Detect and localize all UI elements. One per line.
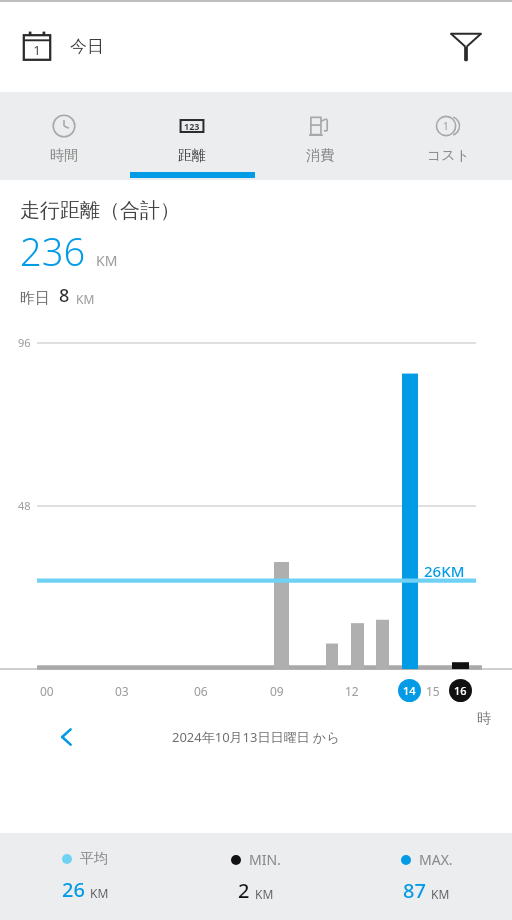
staticText: 2 <box>238 877 250 904</box>
staticText: 00 <box>40 683 54 699</box>
staticText: MAX. <box>419 850 453 869</box>
staticText: KM <box>76 291 95 307</box>
button[interactable]: 1 <box>384 92 512 180</box>
button[interactable]: 16 <box>449 679 472 702</box>
staticText: コスト <box>427 147 470 165</box>
staticText: 消費 <box>306 147 334 165</box>
button[interactable]: 123 <box>128 92 256 180</box>
staticText: 123 <box>184 120 200 132</box>
staticText: 15 <box>426 683 440 699</box>
button[interactable]: MIN. <box>170 850 341 904</box>
staticText: 16 <box>454 683 467 698</box>
staticText: 時 <box>477 710 491 728</box>
staticText: MIN. <box>249 850 281 869</box>
staticText: KM <box>90 885 109 901</box>
staticText: 87 <box>403 877 426 904</box>
staticText: 06 <box>194 683 208 699</box>
staticText: 96 <box>18 335 31 350</box>
button[interactable]: Filter <box>442 22 490 70</box>
button[interactable]: 平均 <box>0 850 170 903</box>
staticText: 26KM <box>424 561 465 581</box>
staticText: 平均 <box>80 850 108 868</box>
staticText: KM <box>255 886 274 902</box>
button[interactable]: MAX. <box>341 850 512 904</box>
staticText: 236 <box>20 225 86 277</box>
staticText: 14 <box>403 683 416 698</box>
staticText: 8 <box>59 283 70 308</box>
staticText: 1 <box>33 41 41 59</box>
staticText: 1 <box>443 119 449 133</box>
button[interactable]: 14 <box>398 679 421 702</box>
staticText: 09 <box>270 683 284 699</box>
staticText: KM <box>431 886 450 902</box>
button[interactable]: Previous <box>46 716 88 758</box>
button[interactable]: 時間 <box>0 92 128 180</box>
staticText: KM <box>96 251 118 270</box>
staticText: 26 <box>62 876 85 903</box>
staticText: 昨日 <box>20 289 50 308</box>
staticText: 時間 <box>50 147 78 165</box>
staticText: 距離 <box>178 147 206 165</box>
button[interactable]: 消費 <box>256 92 384 180</box>
staticText: 48 <box>18 498 31 513</box>
staticText: 12 <box>345 683 359 699</box>
staticText: 走行距離（合計） <box>20 198 180 223</box>
staticText: 今日 <box>70 36 104 57</box>
staticText: 2024年10月13日日曜日 から <box>172 728 340 746</box>
staticText: 03 <box>115 683 129 699</box>
button[interactable]: 1 <box>22 31 112 61</box>
